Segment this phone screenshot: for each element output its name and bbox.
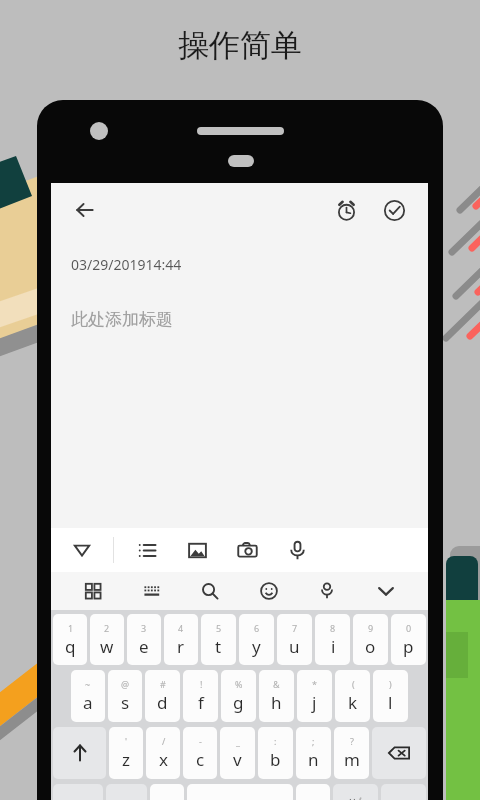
staticText: 英 (347, 797, 358, 800)
button[interactable]: # (145, 670, 180, 722)
button[interactable]: Collapse toolbar (51, 528, 113, 572)
staticText: ! (200, 678, 203, 690)
button[interactable]: 2 (90, 614, 124, 665)
button[interactable]: 5 (201, 614, 236, 665)
staticText: 0 (406, 622, 412, 634)
staticText: y (252, 635, 261, 658)
staticText: 6 (254, 622, 260, 634)
button[interactable]: 1 (53, 614, 87, 665)
button[interactable]: 4 (164, 614, 198, 665)
button[interactable]: Voice input (311, 575, 343, 607)
staticText: u (289, 635, 300, 658)
staticText: 3 (141, 622, 147, 634)
staticText: _ (236, 735, 240, 747)
button[interactable]: 此处添加标题 (71, 298, 428, 340)
button[interactable]: 3 (127, 614, 161, 665)
staticText: ( (352, 678, 355, 690)
staticText: t (215, 635, 222, 658)
staticText: w (100, 635, 114, 658)
button[interactable]: Backspace (372, 727, 426, 779)
button[interactable]: ' (109, 727, 143, 779)
staticText: n (308, 748, 319, 771)
staticText: 8 (330, 622, 336, 634)
button[interactable]: Done (374, 190, 414, 230)
staticText: x (159, 748, 168, 771)
staticText: s (121, 691, 130, 714)
button[interactable]: 6 (239, 614, 274, 665)
button[interactable]: ~ (71, 670, 105, 722)
button[interactable]: Insert image (180, 533, 214, 567)
staticText: e (139, 635, 149, 658)
button[interactable]: _ (220, 727, 255, 779)
button[interactable]: Record audio (280, 533, 314, 567)
button[interactable]: 0 (391, 614, 426, 665)
button[interactable]: ; (296, 727, 331, 779)
staticText: v (233, 748, 242, 771)
button[interactable]: ! (183, 670, 218, 722)
button[interactable]: Back (65, 190, 105, 230)
button[interactable]: Apps (77, 575, 109, 607)
button[interactable]: ? (334, 727, 369, 779)
staticText: d (157, 691, 168, 714)
staticText: m (344, 748, 360, 771)
button[interactable]: * (297, 670, 332, 722)
staticText: l (388, 691, 393, 714)
staticText: # (160, 678, 166, 690)
staticText: g (233, 691, 244, 714)
staticText: ' (125, 735, 128, 747)
button[interactable]: @ (108, 670, 142, 722)
button[interactable]: & (259, 670, 294, 722)
staticText: ? (350, 735, 354, 747)
button[interactable]: ) (373, 670, 408, 722)
staticText: ; (312, 735, 315, 747)
button[interactable]: Search (194, 575, 226, 607)
staticText: 5 (216, 622, 222, 634)
staticText: z (122, 748, 130, 771)
button[interactable]: 7 (277, 614, 312, 665)
staticText: 1 (68, 622, 74, 634)
button[interactable]: Shift (53, 727, 106, 779)
staticText: b (270, 748, 281, 771)
button[interactable]: 8 (315, 614, 350, 665)
staticText: 此处添加标题 (71, 309, 173, 330)
staticText: 4 (178, 622, 184, 634)
staticText: k (348, 691, 358, 714)
button[interactable]: Checklist (130, 533, 164, 567)
staticText: r (177, 635, 185, 658)
button[interactable]: % (221, 670, 256, 722)
staticText: c (196, 748, 205, 771)
button[interactable]: : (258, 727, 293, 779)
button[interactable]: / (146, 727, 180, 779)
button[interactable]: Emoji (253, 575, 285, 607)
staticText: 9 (368, 622, 374, 634)
button[interactable]: Hide keyboard (370, 575, 402, 607)
staticText: % (235, 678, 243, 690)
staticText: 操作简单 (178, 26, 302, 65)
staticText: @ (121, 678, 130, 690)
button[interactable]: Keyboard layout (136, 575, 168, 607)
staticText: f (198, 691, 204, 714)
staticText: h (271, 691, 282, 714)
button[interactable]: Set reminder (326, 190, 366, 230)
staticText: - (199, 735, 202, 747)
staticText: ) (389, 678, 392, 690)
staticText: q (65, 635, 76, 658)
staticText: i (331, 635, 336, 658)
button[interactable]: Take photo (230, 533, 264, 567)
staticText: 03/29/201914:44 (71, 255, 182, 274)
button[interactable]: . (296, 784, 330, 800)
button[interactable]: , (150, 784, 184, 800)
button[interactable]: ( (335, 670, 370, 722)
staticText: 2 (104, 622, 110, 634)
button[interactable]: 英 (333, 784, 378, 800)
button[interactable]: - (183, 727, 217, 779)
staticText: a (83, 691, 93, 714)
button[interactable]: 9 (353, 614, 388, 665)
staticText: & (273, 678, 280, 690)
staticText: ~ (85, 678, 91, 690)
staticText: * (312, 678, 317, 690)
